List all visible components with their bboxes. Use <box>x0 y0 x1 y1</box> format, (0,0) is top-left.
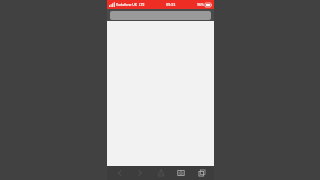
button[interactable]: Address and search bar <box>110 11 211 20</box>
staticText: 09:33 <box>166 2 176 7</box>
button[interactable]: Share <box>153 166 169 180</box>
staticText: 96% <box>197 2 204 7</box>
staticText: Vodafone UK LTE <box>116 2 145 7</box>
button[interactable]: Tabs <box>194 166 210 180</box>
button[interactable]: Bookmarks <box>173 166 189 180</box>
